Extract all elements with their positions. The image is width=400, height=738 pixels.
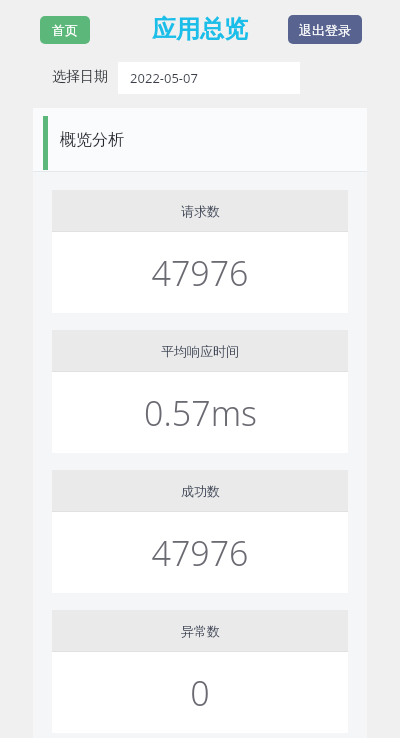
staticText: 成功数 (181, 483, 220, 499)
staticText: 选择日期 (52, 68, 108, 86)
staticText: 概览分析 (60, 130, 124, 150)
staticText: 平均响应时间 (161, 343, 239, 359)
button[interactable]: 首页 (40, 16, 90, 44)
button[interactable]: 成功数 (52, 470, 348, 593)
button[interactable]: 平均响应时间 (52, 330, 348, 453)
staticText: 0.57ms (144, 390, 257, 436)
staticText: 异常数 (181, 623, 220, 639)
button[interactable]: 请求数 (52, 190, 348, 313)
staticText: 退出登录 (299, 22, 351, 38)
staticText: 应用总览 (152, 14, 248, 44)
staticText: 47976 (151, 530, 249, 576)
staticText: 47976 (151, 250, 249, 296)
button[interactable]: 2022-05-07 (118, 62, 300, 94)
button[interactable]: 退出登录 (288, 15, 362, 44)
staticText: 请求数 (181, 203, 220, 219)
staticText: 首页 (52, 22, 78, 38)
staticText: 0 (190, 670, 210, 716)
button[interactable]: 异常数 (52, 610, 348, 733)
staticText: 2022-05-07 (130, 69, 198, 87)
